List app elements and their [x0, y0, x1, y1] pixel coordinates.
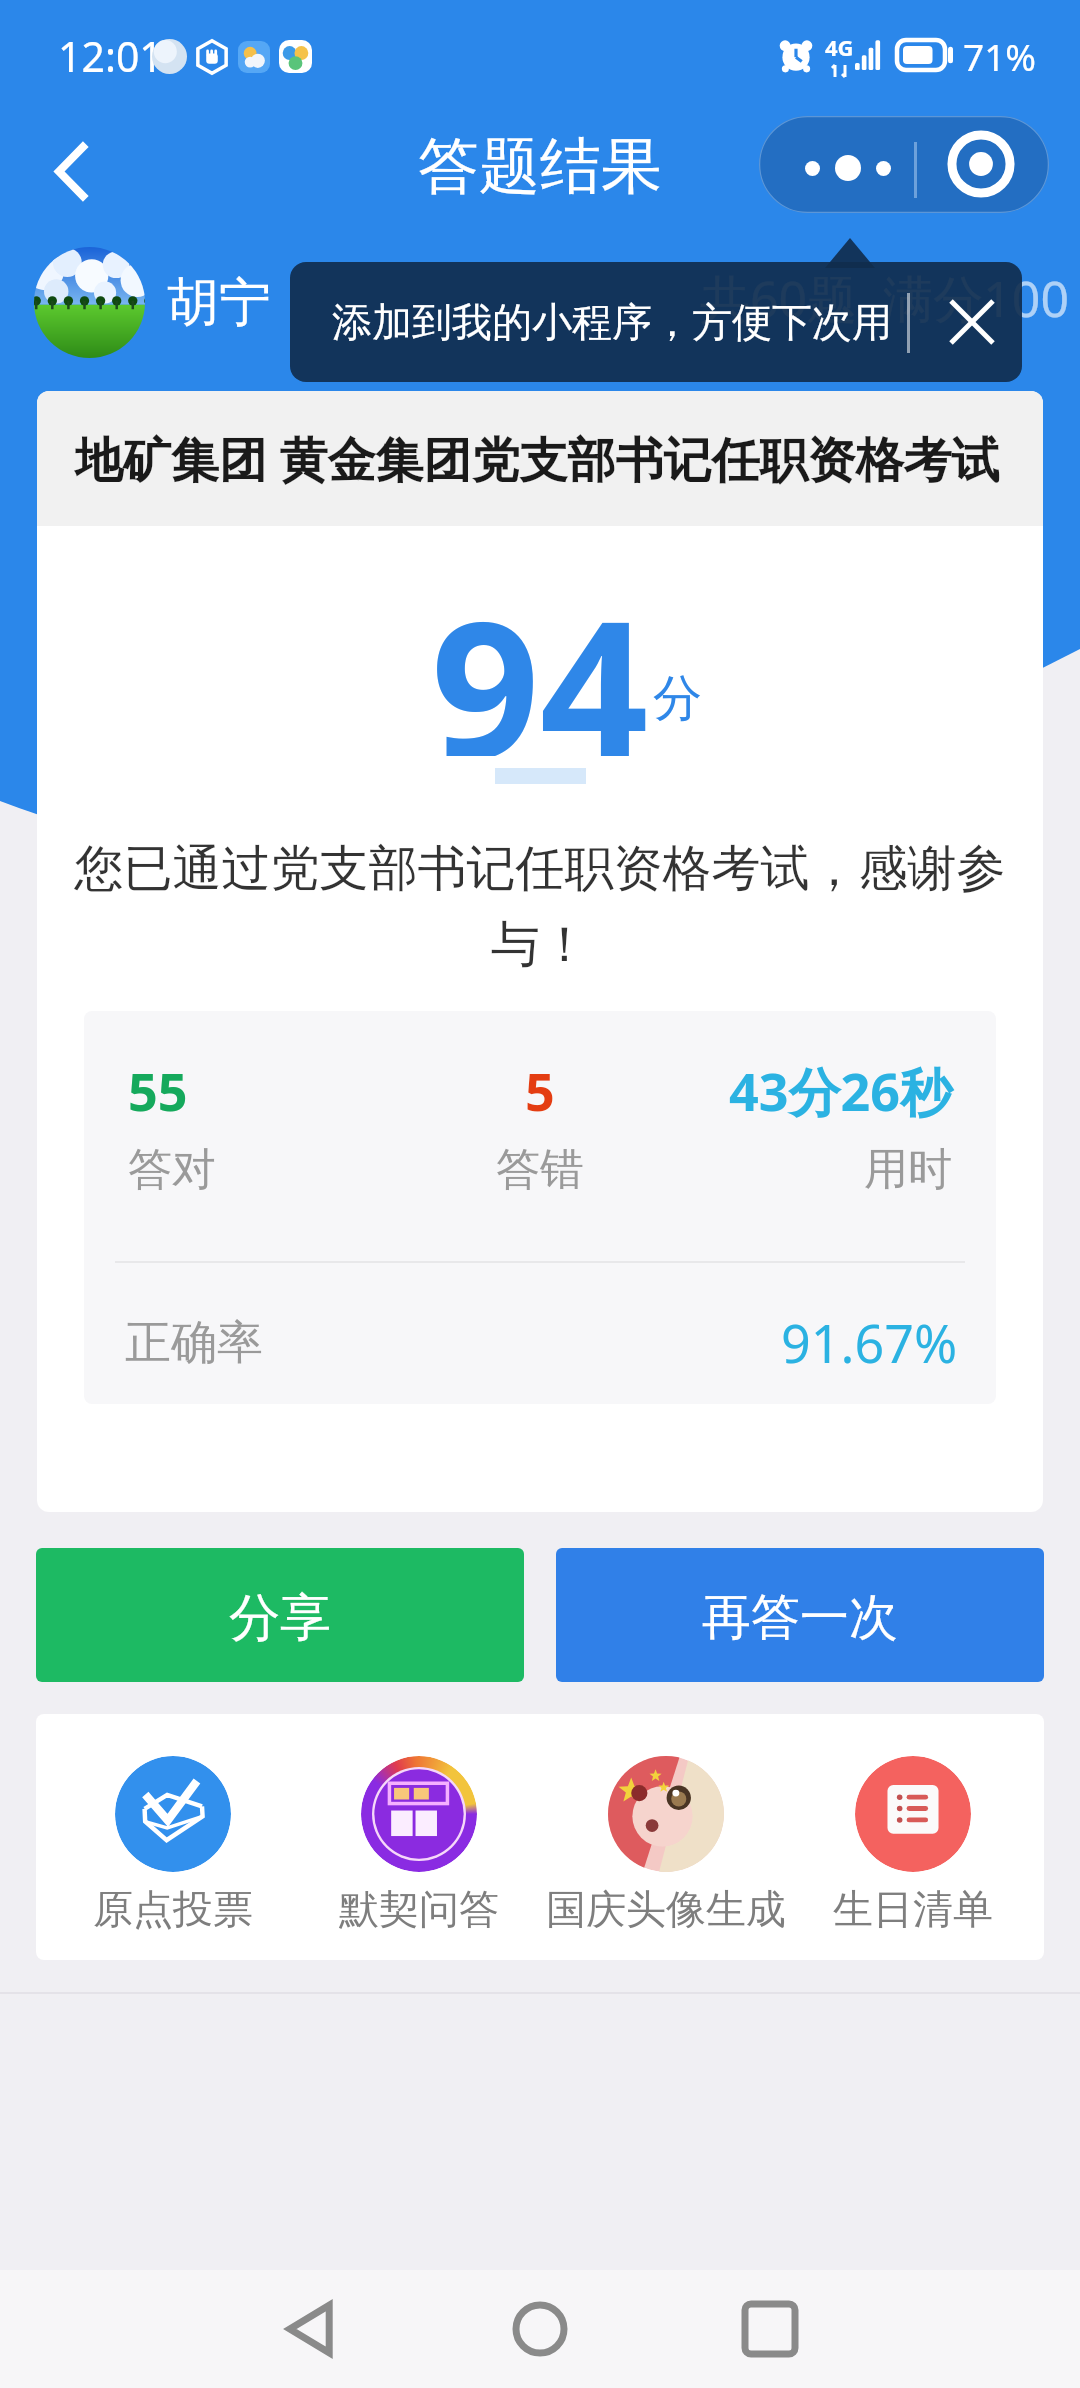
button[interactable]: 默契问答 — [296, 1756, 542, 1934]
button[interactable]: 生日清单 — [789, 1756, 1036, 1934]
button[interactable]: 分享 — [36, 1548, 524, 1682]
staticText: 4G — [825, 32, 854, 62]
staticText: 添加到我的小程序，方便下次用 — [332, 297, 892, 347]
staticText: 地矿集团 黄金集团党支部书记任职资格考试 — [75, 426, 1000, 492]
staticText: 正确率 — [125, 1314, 263, 1372]
staticText: 分享 — [229, 1586, 331, 1650]
staticText: 默契问答 — [339, 1884, 499, 1934]
staticText: 55 — [128, 1055, 188, 1126]
staticText: 生日清单 — [833, 1884, 993, 1934]
staticText: 5 — [525, 1055, 555, 1126]
staticText: 分 — [653, 668, 702, 730]
button[interactable]: 原点投票 — [50, 1756, 296, 1934]
staticText: 91.67% — [781, 1307, 958, 1378]
staticText: 答对 — [128, 1142, 216, 1197]
staticText: 国庆头像生成 — [546, 1884, 786, 1934]
button[interactable]: Close — [922, 272, 1022, 372]
staticText: 共60题 满分100 — [700, 264, 1069, 332]
button[interactable]: Back — [250, 2270, 370, 2388]
button[interactable]: Recent apps — [710, 2270, 830, 2388]
staticText: 胡宁 — [167, 270, 271, 336]
staticText: 12:01 — [58, 28, 163, 84]
staticText: 答题结果 — [418, 128, 662, 205]
staticText: 43分26秒 — [729, 1055, 952, 1126]
staticText: 您已通过党支部书记任职资格考试，感谢参与！ — [61, 838, 1019, 975]
staticText: 71% — [963, 31, 1037, 81]
button[interactable]: Back — [28, 128, 114, 214]
button[interactable]: 国庆头像生成 — [542, 1756, 789, 1934]
staticText: 94 — [431, 556, 649, 756]
staticText: 答错 — [496, 1142, 584, 1197]
staticText: 用时 — [864, 1142, 952, 1197]
staticText: 原点投票 — [93, 1884, 253, 1934]
staticText: 再答一次 — [702, 1587, 898, 1649]
button[interactable]: 再答一次 — [556, 1548, 1044, 1682]
button[interactable]: More options — [759, 116, 1049, 213]
button[interactable]: Home — [480, 2270, 600, 2388]
